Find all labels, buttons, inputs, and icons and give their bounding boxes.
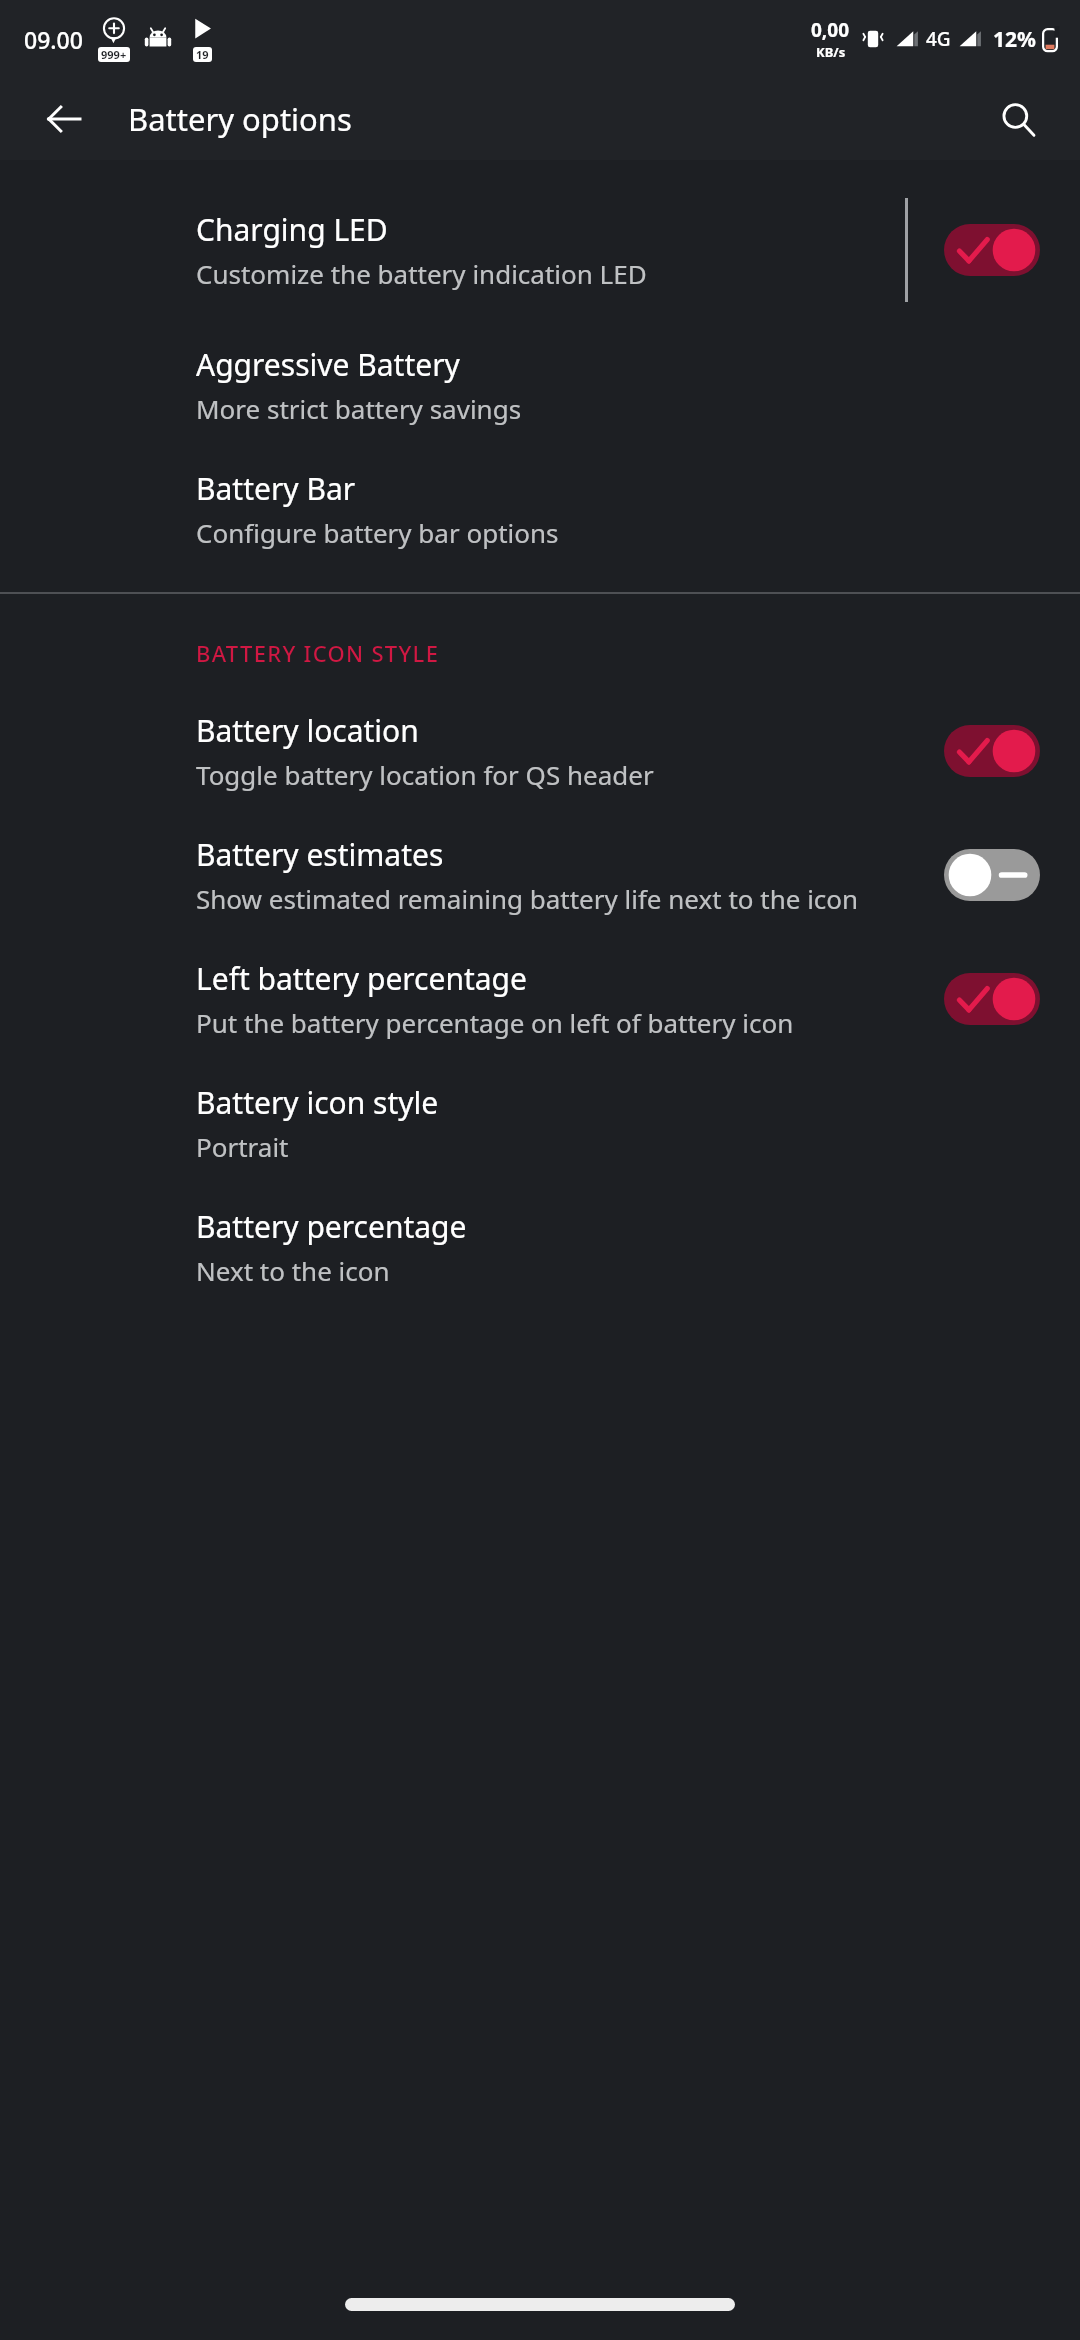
staticText: Battery location bbox=[196, 710, 419, 751]
staticText: Battery options bbox=[128, 98, 352, 140]
staticText: 999+ bbox=[101, 47, 127, 62]
button[interactable]: Left battery percentage bbox=[0, 958, 1080, 1040]
button[interactable]: Battery Bar bbox=[0, 468, 1080, 550]
staticText: Configure battery bar options bbox=[196, 515, 559, 550]
staticText: Next to the icon bbox=[196, 1253, 390, 1288]
button[interactable]: Toggle on bbox=[944, 973, 1040, 1025]
staticText: Toggle battery location for QS header bbox=[196, 757, 654, 792]
staticText: 12% bbox=[993, 25, 1036, 54]
staticText: KB/s bbox=[816, 43, 846, 61]
staticText: Customize the battery indication LED bbox=[196, 256, 647, 291]
staticText: Put the battery percentage on left of ba… bbox=[196, 1005, 794, 1040]
staticText: Battery percentage bbox=[196, 1206, 467, 1247]
staticText: BATTERY ICON STYLE bbox=[196, 638, 440, 668]
staticText: Aggressive Battery bbox=[196, 344, 460, 385]
staticText: 19 bbox=[196, 47, 209, 62]
button[interactable]: Battery icon style bbox=[0, 1082, 1080, 1164]
button[interactable]: Charging LED bbox=[0, 198, 1080, 302]
button[interactable]: Toggle off bbox=[944, 849, 1040, 901]
button[interactable]: Search bbox=[990, 91, 1046, 147]
button[interactable]: Toggle on bbox=[944, 725, 1040, 777]
staticText: More strict battery savings bbox=[196, 391, 522, 426]
button[interactable]: Toggle on bbox=[944, 224, 1040, 276]
staticText: Left battery percentage bbox=[196, 958, 527, 999]
button[interactable]: Aggressive Battery bbox=[0, 344, 1080, 426]
button[interactable]: Battery percentage bbox=[0, 1206, 1080, 1288]
staticText: Battery Bar bbox=[196, 468, 356, 509]
staticText: Battery icon style bbox=[196, 1082, 439, 1123]
staticText: 09.00 bbox=[24, 24, 83, 55]
button[interactable]: Back bbox=[36, 91, 92, 147]
staticText: Show estimated remaining battery life ne… bbox=[196, 881, 859, 916]
staticText: Charging LED bbox=[196, 209, 388, 250]
button[interactable]: Battery location bbox=[0, 710, 1080, 792]
staticText: Portrait bbox=[196, 1129, 289, 1164]
staticText: 0,00 bbox=[811, 17, 850, 43]
staticText: Battery estimates bbox=[196, 834, 444, 875]
button[interactable]: Battery estimates bbox=[0, 834, 1080, 916]
staticText: 4G bbox=[926, 26, 951, 52]
